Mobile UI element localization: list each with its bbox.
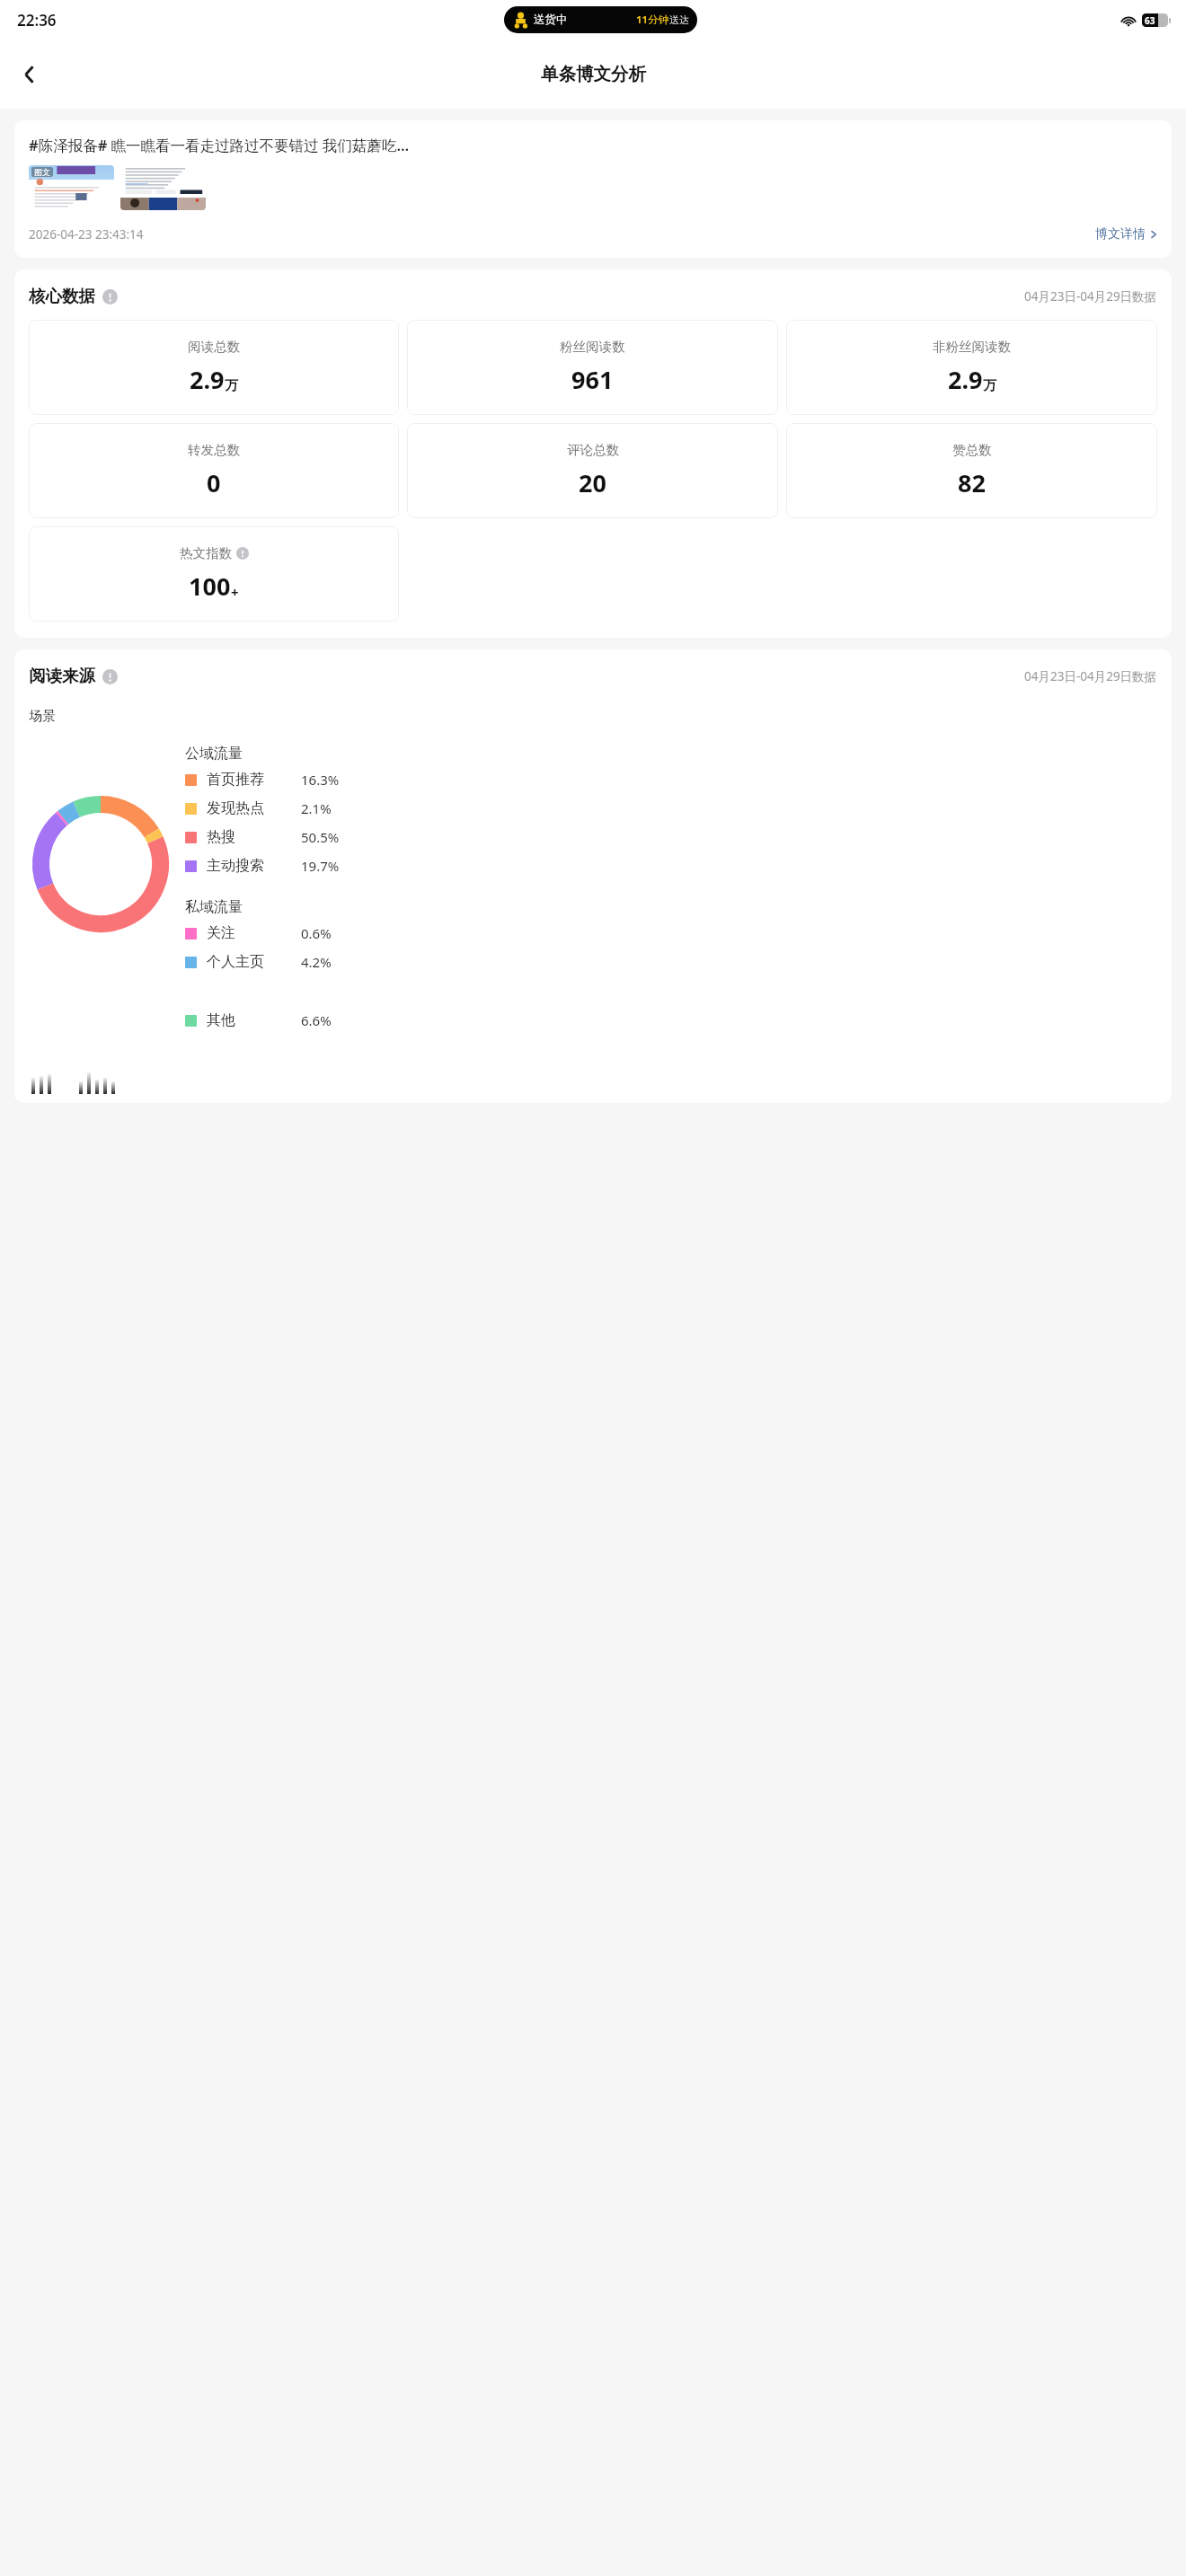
staticText: 单条博文分析 <box>541 63 646 85</box>
staticText: 送达 <box>669 13 689 26</box>
staticText: 个人主页 <box>207 953 301 971</box>
staticText: 阅读总数 <box>188 339 240 355</box>
staticText: 82 <box>958 466 986 499</box>
staticText: 发现热点 <box>207 799 301 817</box>
staticText: 图文 <box>34 167 50 177</box>
staticText: 万 <box>225 377 238 394</box>
button[interactable]: 评论总数 <box>407 423 778 518</box>
button[interactable]: 粉丝阅读数 <box>407 320 778 415</box>
staticText: 非粉丝阅读数 <box>933 339 1011 355</box>
staticText: 2.9 <box>190 363 225 396</box>
button[interactable]: 赞总数 <box>786 423 1157 518</box>
staticText: 0.6% <box>301 924 332 942</box>
staticText: + <box>231 583 239 601</box>
button[interactable]: 说明 <box>102 668 118 684</box>
staticText: 961 <box>571 363 614 396</box>
button[interactable]: 首页推荐 <box>185 765 1157 794</box>
staticText: 热搜 <box>207 828 301 846</box>
staticText: 博文详情 <box>1095 226 1146 243</box>
staticText: 评论总数 <box>567 442 619 458</box>
staticText: 主动搜索 <box>207 857 301 875</box>
staticText: 22:36 <box>17 10 57 31</box>
staticText: 万 <box>983 377 996 394</box>
button[interactable]: 返回 <box>5 50 54 99</box>
staticText: 4.2% <box>301 953 332 971</box>
staticText: 63 <box>1145 14 1155 27</box>
staticText: 送货中 <box>534 13 568 27</box>
staticText: 粉丝阅读数 <box>560 339 625 355</box>
button[interactable]: 个人主页 <box>185 948 1157 976</box>
staticText: 私域流量 <box>185 898 243 916</box>
staticText: 6.6% <box>301 1011 332 1029</box>
button[interactable]: 热搜 <box>185 823 1157 851</box>
staticText: 赞总数 <box>952 442 992 458</box>
button[interactable]: 主动搜索 <box>185 851 1157 880</box>
staticText: 04月23日-04月29日数据 <box>1024 288 1157 304</box>
button[interactable]: 发现热点 <box>185 794 1157 823</box>
staticText: 100 <box>189 569 231 603</box>
staticText: 20 <box>579 466 606 499</box>
staticText: 11分钟 <box>636 13 669 27</box>
staticText: 转发总数 <box>188 442 240 458</box>
button[interactable]: 说明 <box>102 288 118 304</box>
staticText: 热文指数 <box>180 545 232 561</box>
staticText: 2026-04-23 23:43:14 <box>29 226 144 243</box>
staticText: 19.7% <box>301 857 340 875</box>
staticText: 2.1% <box>301 799 332 817</box>
button[interactable]: 热文指数 <box>29 526 399 622</box>
button[interactable]: 阅读总数 <box>29 320 399 415</box>
staticText: 16.3% <box>301 771 340 789</box>
staticText: 阅读来源 <box>29 666 95 686</box>
button[interactable]: 其他 <box>185 1006 1157 1035</box>
button[interactable]: 关注 <box>185 919 1157 948</box>
staticText: 公域流量 <box>185 745 243 763</box>
staticText: #陈泽报备# 瞧一瞧看一看走过路过不要错过 我们菇蘑吃… <box>29 135 410 155</box>
staticText: 其他 <box>207 1011 301 1029</box>
staticText: 关注 <box>207 924 301 942</box>
button[interactable]: 转发总数 <box>29 423 399 518</box>
staticText: 核心数据 <box>29 286 95 306</box>
staticText: 04月23日-04月29日数据 <box>1024 668 1157 684</box>
staticText: 场景 <box>29 708 56 725</box>
button[interactable]: 非粉丝阅读数 <box>786 320 1157 415</box>
staticText: 50.5% <box>301 828 340 846</box>
staticText: 2.9 <box>948 363 983 396</box>
staticText: 首页推荐 <box>207 771 301 789</box>
button[interactable]: 送货中 11分钟送达 <box>504 6 697 33</box>
staticText: 0 <box>207 466 221 499</box>
button[interactable]: 博文详情 <box>1095 223 1157 246</box>
